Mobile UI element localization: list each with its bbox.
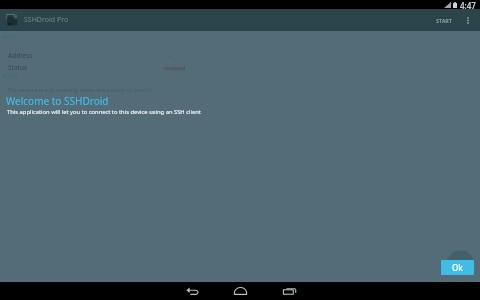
staticText: START [436,17,452,24]
staticText: SETUP [2,73,18,80]
staticText: - [169,52,171,59]
staticText: Ok [452,262,463,273]
staticText: 4:47 [460,0,476,9]
staticText: stopped [164,64,186,71]
button[interactable]: Recent apps [279,285,299,297]
button[interactable]: Back [182,285,202,297]
staticText: Address [8,51,33,60]
staticText: SSHDroid Pro [24,15,69,25]
button[interactable]: Ok [441,260,474,275]
staticText: This application will let you to connect… [7,108,201,116]
staticText: INFO [2,34,15,41]
button[interactable]: START [431,12,457,29]
staticText: The service is not running, press the bu… [7,86,152,94]
button[interactable]: Home [230,285,250,297]
staticText: Status [8,63,28,72]
button[interactable]: More options [461,9,475,31]
button[interactable]: App icon [5,11,19,29]
staticText: Welcome to SSHDroid [6,94,109,108]
